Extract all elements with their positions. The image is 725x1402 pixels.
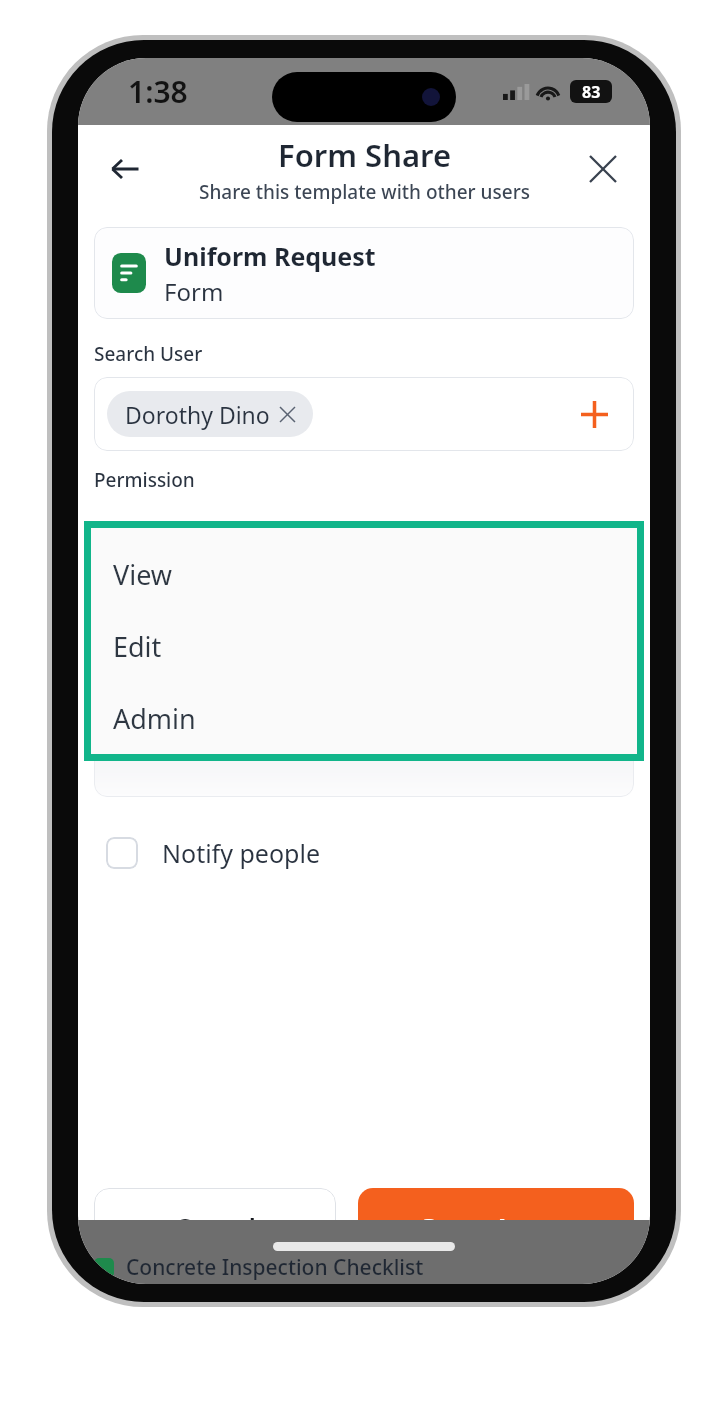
staticText: Notify people bbox=[162, 836, 320, 870]
staticText: Form Share bbox=[278, 134, 452, 176]
button[interactable]: Add user bbox=[572, 392, 616, 436]
button[interactable]: Dorothy Dino bbox=[94, 377, 634, 451]
staticText: Uniform Request bbox=[164, 239, 376, 273]
button[interactable]: Notify people bbox=[94, 827, 332, 879]
button[interactable]: Dorothy Dino bbox=[107, 391, 313, 437]
button[interactable]: Uniform Request bbox=[94, 227, 634, 319]
staticText: Dorothy Dino bbox=[125, 399, 270, 430]
staticText: Grant Access bbox=[418, 1210, 575, 1244]
staticText: Share this template with other users bbox=[199, 179, 530, 205]
staticText: 1:38 bbox=[128, 71, 188, 112]
staticText: 83 bbox=[582, 81, 601, 103]
staticText: Search User bbox=[94, 341, 203, 367]
button[interactable]: Close bbox=[574, 140, 632, 198]
staticText: Concrete Inspection Checklist bbox=[126, 1253, 424, 1282]
staticText: Cancel bbox=[175, 1210, 256, 1244]
staticText: Permission bbox=[94, 467, 195, 493]
button[interactable] bbox=[94, 743, 634, 797]
button[interactable]: Admin bbox=[91, 698, 637, 738]
button[interactable]: Edit bbox=[91, 626, 637, 666]
button[interactable]: Cancel bbox=[94, 1188, 336, 1266]
staticText: Form bbox=[164, 275, 224, 308]
button[interactable]: Grant Access bbox=[358, 1188, 634, 1266]
staticText: Admin bbox=[113, 700, 196, 737]
staticText: View bbox=[113, 556, 173, 593]
button[interactable]: Back bbox=[96, 140, 154, 198]
staticText: Edit bbox=[113, 628, 162, 665]
button[interactable]: View bbox=[91, 554, 637, 594]
